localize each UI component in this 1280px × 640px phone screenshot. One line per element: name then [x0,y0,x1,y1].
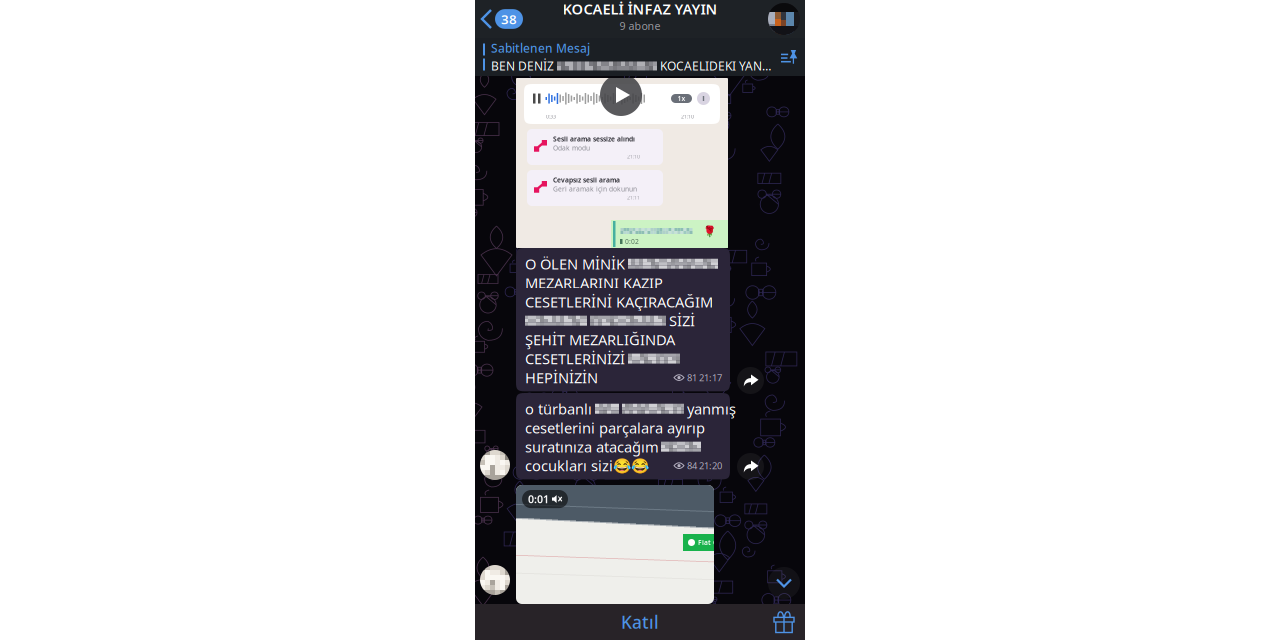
button[interactable]: o türbanlı [516,393,730,479]
staticText: 😂😂 [613,457,649,474]
staticText: 9 abone [619,19,660,33]
button[interactable]: Scroll to latest message [768,567,800,599]
staticText: suratınıza atacağım [525,437,659,456]
button[interactable]: Pinned message [475,38,805,76]
staticText: 38 [501,10,517,28]
staticText: ŞEHİT MEZARLIĞINDA [525,330,675,349]
staticText: MEZARLARINI KAZIP [525,273,663,292]
staticText: 0:33 [546,113,556,120]
staticText: 81 21:17 [687,371,722,384]
staticText: cesetlerini parçalara ayırıp [525,418,705,437]
staticText: KOCAELİDEKİ YAN… [657,58,771,74]
staticText: SİZİ [669,311,695,330]
button[interactable]: Back [475,0,523,38]
staticText: Geri aramak için dokunun [553,185,637,193]
staticText: 21:10 [681,113,694,120]
staticText: CESETLERİNİZİ [525,349,625,368]
staticText: 0:01 [528,492,549,506]
button[interactable]: Send a gift [763,604,805,640]
button[interactable]: Open photo [516,78,728,248]
staticText: Katıl [621,610,659,633]
button[interactable]: O ÖLEN MİNİK [516,248,730,391]
staticText: Cevapsız sesli arama [553,176,620,184]
staticText: BEN DENİZ [491,58,557,74]
staticText: O ÖLEN MİNİK [525,254,625,273]
staticText: Sesli arama sessize alındı [553,135,635,143]
button[interactable]: Forward message [737,367,764,394]
staticText: Odak modu [553,144,590,152]
staticText: o türbanlı [525,399,592,418]
button[interactable]: Katıl [585,604,695,640]
staticText: 0:02 [625,237,639,246]
staticText: 1x [677,94,685,103]
button[interactable]: Channel profile [768,3,805,35]
staticText: HEPİNİZİN [525,368,598,387]
button[interactable]: Play video [516,485,714,604]
staticText: 🌹 [703,225,716,237]
staticText: 21:10 [627,153,640,160]
staticText: cocukları sizi [525,456,613,475]
staticText: KOCAELİ İNFAZ YAYIN [562,0,717,19]
staticText: Sabitlenen Mesaj [491,40,590,56]
staticText: Fiat Güv [698,538,726,547]
staticText: yanmış [687,399,736,418]
button[interactable]: Forward message [737,453,764,480]
staticText: 21:11 [627,194,640,201]
staticText: 84 21:20 [687,459,722,472]
staticText: CESETLERİNİ KAÇIRACAĞIM [525,292,713,311]
